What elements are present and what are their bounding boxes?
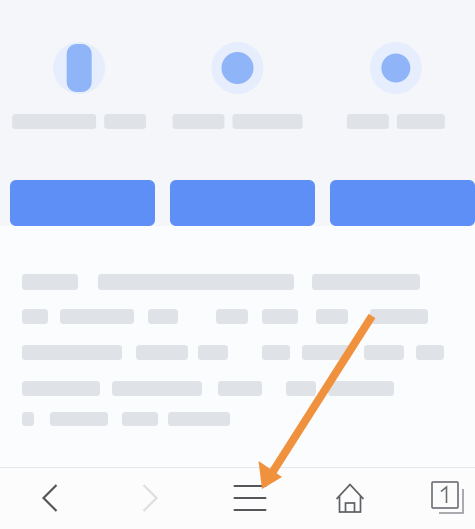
button[interactable]	[10, 180, 155, 226]
button[interactable]: Tabs	[417, 467, 475, 529]
button[interactable]: Back	[19, 467, 81, 529]
button[interactable]	[158, 40, 317, 129]
button[interactable]	[330, 180, 475, 226]
button[interactable]	[0, 40, 158, 129]
button[interactable]	[317, 40, 475, 129]
button[interactable]	[170, 180, 315, 226]
button[interactable]: Forward	[119, 467, 181, 529]
button[interactable]: Home	[319, 467, 381, 529]
button[interactable]: Menu	[219, 467, 281, 529]
